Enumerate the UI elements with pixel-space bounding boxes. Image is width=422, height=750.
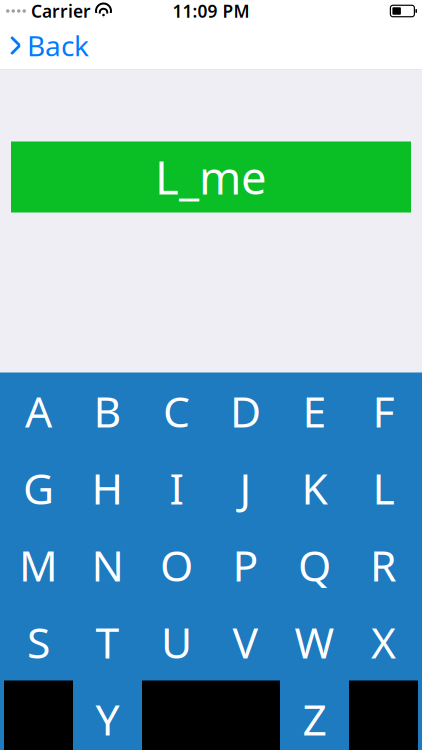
staticText: L bbox=[372, 460, 394, 516]
button[interactable]: C bbox=[142, 372, 211, 449]
staticText: D bbox=[230, 383, 261, 439]
button[interactable]: K bbox=[280, 449, 349, 526]
staticText: H bbox=[91, 460, 123, 516]
staticText: W bbox=[294, 614, 334, 670]
staticText: Y bbox=[95, 691, 119, 747]
staticText: M bbox=[19, 537, 58, 593]
staticText: X bbox=[371, 614, 396, 670]
button[interactable]: R bbox=[349, 526, 418, 603]
button[interactable]: S bbox=[4, 603, 73, 680]
button[interactable]: H bbox=[73, 449, 142, 526]
button[interactable]: E bbox=[280, 372, 349, 449]
button[interactable]: F bbox=[349, 372, 418, 449]
button[interactable]: Back bbox=[0, 19, 89, 72]
staticText: B bbox=[93, 383, 121, 439]
button[interactable]: Z bbox=[280, 680, 349, 750]
button[interactable]: Y bbox=[73, 680, 142, 750]
staticText: Back bbox=[27, 27, 89, 64]
button[interactable]: V bbox=[211, 603, 280, 680]
button[interactable]: Q bbox=[280, 526, 349, 603]
staticText: Z bbox=[302, 691, 326, 747]
staticText: 11:09 PM bbox=[172, 0, 249, 22]
staticText: I bbox=[169, 460, 183, 516]
button[interactable]: T bbox=[73, 603, 142, 680]
staticText: Carrier bbox=[31, 0, 91, 22]
button[interactable]: L bbox=[349, 449, 418, 526]
staticText: E bbox=[302, 383, 326, 439]
staticText: U bbox=[161, 614, 192, 670]
button[interactable]: J bbox=[211, 449, 280, 526]
button[interactable]: M bbox=[4, 526, 73, 603]
staticText: S bbox=[27, 614, 50, 670]
button[interactable]: X bbox=[349, 603, 418, 680]
staticText: P bbox=[232, 537, 258, 593]
button[interactable]: W bbox=[280, 603, 349, 680]
button[interactable]: N bbox=[73, 526, 142, 603]
staticText: K bbox=[301, 460, 327, 516]
button[interactable]: I bbox=[142, 449, 211, 526]
staticText: C bbox=[163, 383, 190, 439]
staticText: V bbox=[232, 614, 258, 670]
button[interactable]: G bbox=[4, 449, 73, 526]
staticText: O bbox=[160, 537, 193, 593]
staticText: T bbox=[95, 614, 119, 670]
staticText: G bbox=[23, 460, 54, 516]
staticText: Q bbox=[298, 537, 331, 593]
staticText: L_me bbox=[155, 147, 267, 207]
button[interactable]: A bbox=[4, 372, 73, 449]
staticText: A bbox=[25, 383, 52, 439]
button[interactable]: U bbox=[142, 603, 211, 680]
staticText: J bbox=[239, 460, 251, 516]
staticText: R bbox=[370, 537, 397, 593]
staticText: F bbox=[372, 383, 394, 439]
staticText: N bbox=[91, 537, 123, 593]
button[interactable]: P bbox=[211, 526, 280, 603]
button[interactable]: O bbox=[142, 526, 211, 603]
button[interactable]: B bbox=[73, 372, 142, 449]
button[interactable]: D bbox=[211, 372, 280, 449]
